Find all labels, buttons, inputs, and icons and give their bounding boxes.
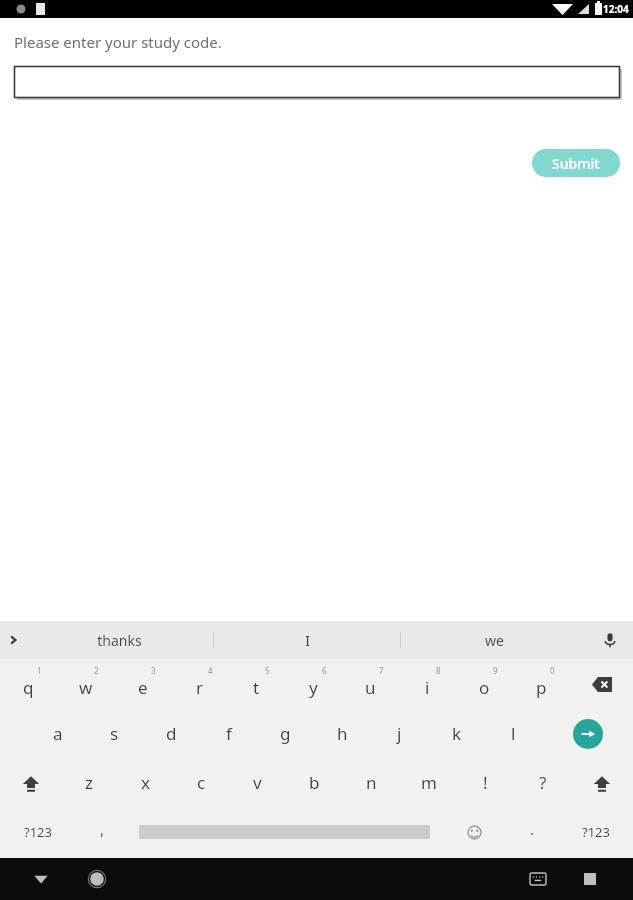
staticText: 4 (208, 665, 213, 676)
button[interactable]: c (173, 758, 229, 807)
staticText: j (397, 722, 402, 745)
button[interactable]: t (228, 659, 285, 709)
button[interactable]: i (399, 659, 456, 709)
staticText: . (530, 819, 535, 839)
staticText: 8 (436, 665, 441, 676)
staticText: z (85, 771, 93, 794)
staticText: a (53, 722, 63, 745)
staticText: i (425, 676, 430, 699)
button[interactable]: Home (80, 862, 114, 896)
staticText: p (536, 676, 547, 699)
button[interactable]: Recent apps (573, 862, 607, 896)
staticText: ? (539, 771, 547, 794)
button[interactable]: ? (514, 758, 571, 807)
button[interactable]: Submit (532, 149, 620, 177)
button[interactable]: Expand suggestions (2, 629, 24, 651)
staticText: d (166, 722, 177, 745)
button[interactable]: . (507, 807, 558, 857)
button[interactable]: p (513, 659, 570, 709)
staticText: 3 (151, 665, 156, 676)
button[interactable]: Emoji (441, 807, 507, 857)
button[interactable]: h (314, 709, 371, 758)
staticText: x (141, 771, 150, 794)
staticText: f (226, 722, 232, 745)
staticText: 6 (322, 665, 327, 676)
button[interactable]: w (57, 659, 114, 709)
staticText: , (100, 819, 105, 839)
button[interactable]: Shift (0, 758, 61, 807)
staticText: g (280, 722, 291, 745)
button[interactable]: r (171, 659, 228, 709)
staticText: c (197, 771, 206, 794)
button[interactable]: Shift (571, 758, 633, 807)
staticText: m (421, 771, 437, 794)
staticText: h (337, 722, 348, 745)
button[interactable]: a (29, 709, 86, 758)
staticText: o (479, 676, 490, 699)
staticText: q (23, 676, 34, 699)
staticText: 7 (379, 665, 384, 676)
button[interactable]: l (485, 709, 542, 758)
staticText: 2 (94, 665, 99, 676)
button[interactable]: z (61, 758, 117, 807)
button[interactable]: v (229, 758, 286, 807)
staticText: y (309, 676, 318, 699)
button[interactable]: q (0, 659, 57, 709)
button[interactable]: ! (457, 758, 514, 807)
button[interactable]: b (286, 758, 343, 807)
button[interactable]: ?123 (558, 807, 633, 857)
button[interactable]: ?123 (0, 807, 76, 857)
button[interactable]: e (114, 659, 171, 709)
button[interactable]: f (200, 709, 257, 758)
staticText: l (511, 722, 516, 745)
button[interactable]: thanks (26, 621, 213, 659)
button[interactable]: I (214, 621, 400, 659)
button[interactable] (14, 66, 620, 98)
staticText: ?123 (582, 823, 610, 841)
button[interactable]: Voice input (597, 627, 623, 653)
button[interactable]: Backspace (570, 659, 633, 709)
button[interactable]: k (428, 709, 485, 758)
button[interactable]: n (343, 758, 400, 807)
button[interactable]: m (400, 758, 457, 807)
staticText: 1 (37, 665, 42, 676)
staticText: b (309, 771, 320, 794)
button[interactable]: s (86, 709, 143, 758)
staticText: I (305, 631, 310, 650)
button[interactable]: j (371, 709, 428, 758)
button[interactable]: we (401, 621, 587, 659)
staticText: u (365, 676, 376, 699)
button[interactable]: o (456, 659, 513, 709)
staticText: thanks (97, 631, 142, 650)
staticText: s (110, 722, 119, 745)
staticText: 5 (265, 665, 270, 676)
staticText: Please enter your study code. (14, 32, 222, 52)
button[interactable]: y (285, 659, 342, 709)
staticText: we (485, 631, 504, 650)
button[interactable]: , (76, 807, 128, 857)
staticText: 12:04 (603, 2, 629, 16)
staticText: e (138, 676, 148, 699)
staticText: ?123 (24, 823, 52, 841)
staticText: Submit (552, 154, 600, 173)
staticText: w (79, 676, 93, 699)
button[interactable]: x (117, 758, 173, 807)
staticText: v (253, 771, 262, 794)
button[interactable]: Enter (542, 709, 633, 758)
staticText: k (452, 722, 462, 745)
staticText: t (253, 676, 260, 699)
staticText: ! (483, 771, 488, 794)
button[interactable]: Space (128, 807, 441, 857)
staticText: r (196, 676, 204, 699)
button[interactable]: Switch keyboard (521, 862, 555, 896)
button[interactable]: u (342, 659, 399, 709)
button[interactable]: d (143, 709, 200, 758)
staticText: n (366, 771, 377, 794)
staticText: 0 (550, 665, 555, 676)
button[interactable]: g (257, 709, 314, 758)
button[interactable]: Back (24, 862, 58, 896)
staticText: 9 (493, 665, 498, 676)
